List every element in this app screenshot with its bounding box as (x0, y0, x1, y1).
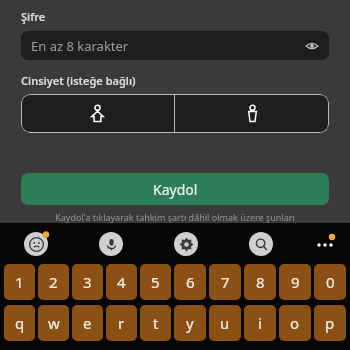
staticText: w (48, 313, 60, 333)
button[interactable]: Settings (174, 232, 198, 256)
button[interactable]: Search (249, 232, 273, 256)
button[interactable]: w (38, 305, 69, 341)
staticText: 8 (256, 272, 265, 292)
button[interactable]: 0 (314, 264, 346, 300)
button[interactable]: t (140, 305, 171, 341)
button[interactable]: q (4, 305, 35, 341)
staticText: i (258, 313, 262, 333)
staticText: u (220, 313, 230, 333)
button[interactable]: Emoji (24, 232, 48, 256)
staticText: Kaydol (153, 180, 198, 199)
staticText: t (153, 313, 159, 333)
button[interactable]: r (106, 305, 137, 341)
button[interactable]: 4 (106, 264, 137, 300)
staticText: p (325, 313, 335, 333)
staticText: En az 8 karakter (31, 37, 129, 55)
button[interactable]: 2 (38, 264, 69, 300)
staticText: y (186, 313, 194, 333)
button[interactable]: p (314, 305, 346, 341)
button[interactable]: En az 8 karakter (21, 31, 329, 60)
staticText: 6 (186, 272, 195, 292)
button[interactable]: Voice input (99, 232, 123, 256)
button[interactable]: 5 (140, 264, 171, 300)
button[interactable]: u (209, 305, 241, 341)
button[interactable]: e (72, 305, 103, 341)
button[interactable]: 8 (244, 264, 276, 300)
button[interactable]: 1 (4, 264, 35, 300)
staticText: q (15, 313, 25, 333)
button[interactable]: y (174, 305, 206, 341)
button[interactable]: o (279, 305, 311, 341)
button[interactable]: i (244, 305, 276, 341)
staticText: o (290, 313, 300, 333)
staticText: r (118, 313, 125, 333)
staticText: 3 (83, 272, 92, 292)
button[interactable]: Show password (302, 36, 322, 56)
staticText: 2 (49, 272, 58, 292)
staticText: 0 (326, 272, 335, 292)
button[interactable]: More options (313, 232, 337, 256)
button[interactable]: Male (21, 94, 174, 133)
button[interactable]: 3 (72, 264, 103, 300)
staticText: 5 (151, 272, 160, 292)
button[interactable]: 7 (209, 264, 241, 300)
button[interactable]: Female (175, 94, 329, 133)
staticText: Şifre (21, 9, 46, 24)
staticText: 1 (15, 272, 24, 292)
button[interactable]: 6 (174, 264, 206, 300)
button[interactable]: 9 (279, 264, 311, 300)
staticText: Cinsiyet (isteğe bağlı) (21, 73, 136, 88)
staticText: 7 (221, 272, 230, 292)
staticText: e (83, 313, 92, 333)
staticText: 9 (291, 272, 300, 292)
button[interactable]: Kaydol (21, 173, 329, 205)
staticText: Kaydol'a tıklayarak tahkim şartı dâhil o… (21, 211, 329, 223)
staticText: 4 (117, 272, 126, 292)
